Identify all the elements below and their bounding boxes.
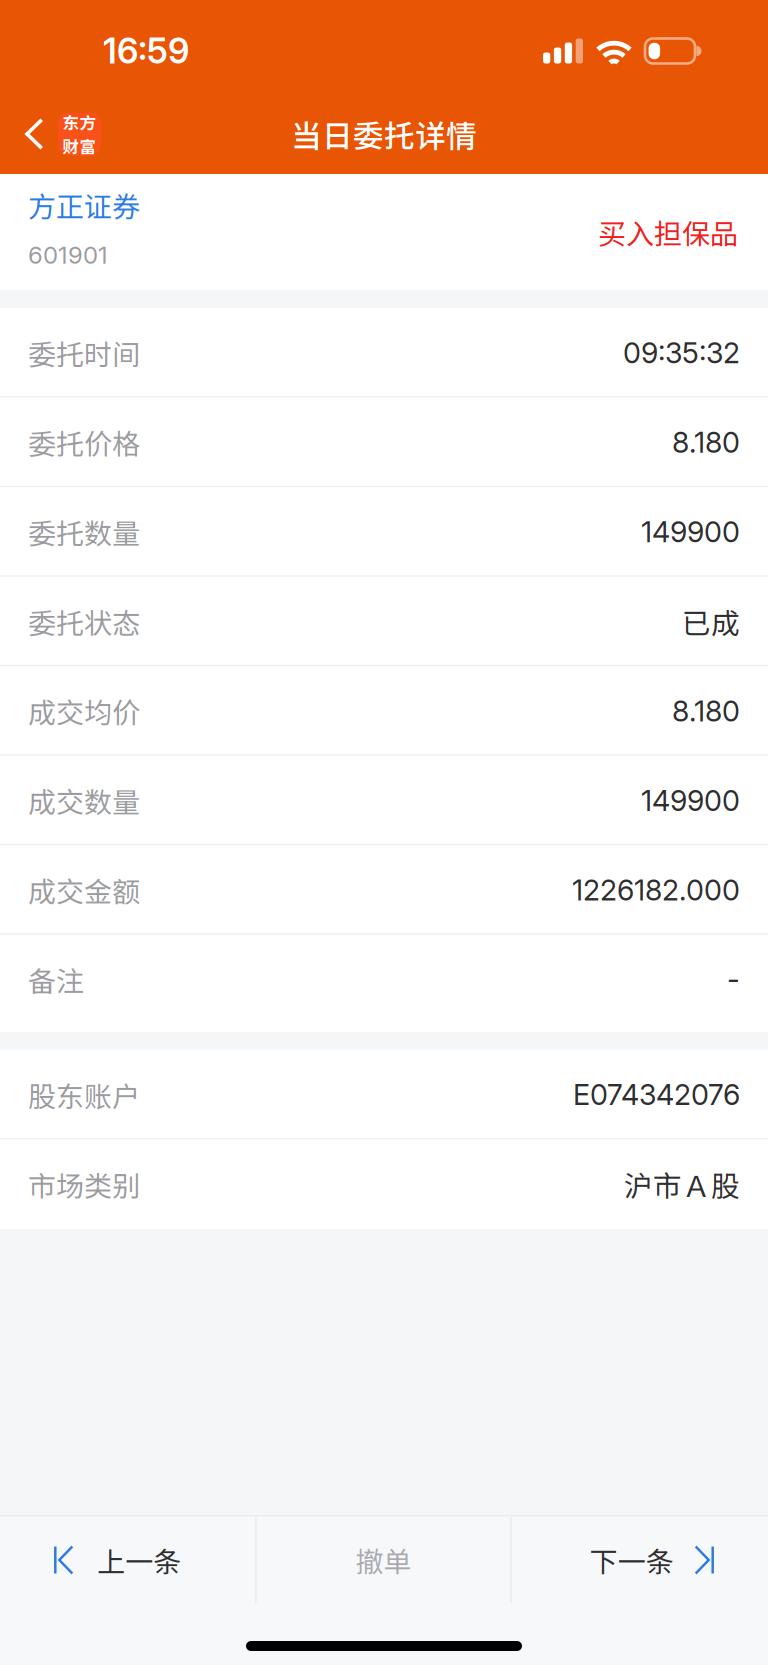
staticText: 149900 xyxy=(641,783,740,818)
staticText: 下一条 xyxy=(590,1540,674,1580)
staticText: 撤单 xyxy=(355,1540,411,1580)
staticText: 09:35:32 xyxy=(623,335,740,370)
staticText: 149900 xyxy=(641,514,740,549)
staticText: 市场类别 xyxy=(28,1164,140,1204)
staticText: 方正证券 xyxy=(28,185,140,225)
staticText: 委托数量 xyxy=(28,512,140,552)
button[interactable]: 撤单 xyxy=(256,1515,510,1605)
staticText: 财富 xyxy=(62,134,96,158)
staticText: 已成 xyxy=(682,601,740,642)
staticText: 成交金额 xyxy=(28,870,140,910)
staticText: - xyxy=(727,962,740,997)
staticText: 16:59 xyxy=(103,30,189,72)
staticText: 上一条 xyxy=(97,1540,181,1580)
staticText: 601901 xyxy=(28,240,108,269)
staticText: 东方 xyxy=(62,110,96,134)
staticText: 委托时间 xyxy=(28,332,140,373)
staticText: 1226182.000 xyxy=(572,873,740,907)
staticText: 委托状态 xyxy=(28,601,140,642)
staticText: 买入担保品 xyxy=(598,212,738,252)
staticText: 股东账户 xyxy=(28,1074,140,1115)
staticText: 当日委托详情 xyxy=(291,112,477,156)
staticText: 备注 xyxy=(28,959,84,1000)
staticText: 沪市Ａ股 xyxy=(624,1163,740,1205)
button[interactable]: 上一条 xyxy=(0,1515,255,1605)
staticText: 成交均价 xyxy=(28,691,140,731)
staticText: 8.180 xyxy=(672,425,740,460)
button[interactable]: 下一条 xyxy=(512,1515,768,1605)
staticText: 委托价格 xyxy=(28,422,140,463)
staticText: 8.180 xyxy=(672,694,740,728)
staticText: E074342076 xyxy=(573,1077,740,1112)
staticText: 成交数量 xyxy=(28,780,140,821)
button[interactable]: 返回 东方财富 xyxy=(0,98,117,170)
